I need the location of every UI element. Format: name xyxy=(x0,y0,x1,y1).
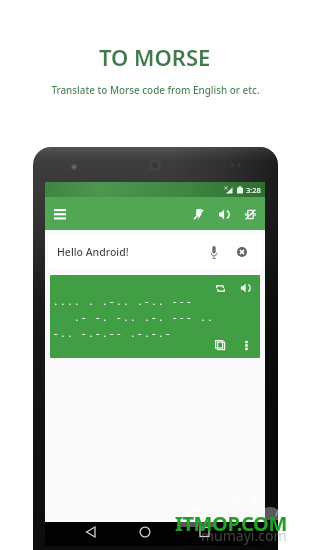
button[interactable]: Volume xyxy=(214,204,234,224)
button[interactable]: Open navigation drawer xyxy=(50,204,70,224)
button[interactable]: Copy xyxy=(211,336,229,354)
staticText: Translate to Morse code from English or … xyxy=(51,83,260,96)
staticText: mumayi.com xyxy=(201,526,287,545)
staticText: .... . .-.. .-.. --- xyxy=(53,295,194,307)
staticText: .- -. -.. .-. --- .. xyxy=(53,311,215,323)
staticText: -.. -.-.-- .-.-.- xyxy=(53,327,173,339)
staticText: TO MORSE xyxy=(99,42,211,72)
button[interactable]: More options xyxy=(237,336,255,354)
button[interactable]: Flash off xyxy=(188,204,208,224)
button[interactable]: Play sound xyxy=(237,279,255,297)
staticText: Hello Android! xyxy=(57,245,129,259)
button[interactable]: Voice input xyxy=(205,243,223,261)
button[interactable]: Vibration off xyxy=(240,204,260,224)
button[interactable]: Repeat xyxy=(211,279,229,297)
button[interactable]: Clear text xyxy=(233,243,251,261)
staticText: ITMOP.COM xyxy=(175,510,287,537)
staticText: 3:28 xyxy=(246,185,261,195)
button[interactable]: Hello Android! xyxy=(48,234,262,269)
